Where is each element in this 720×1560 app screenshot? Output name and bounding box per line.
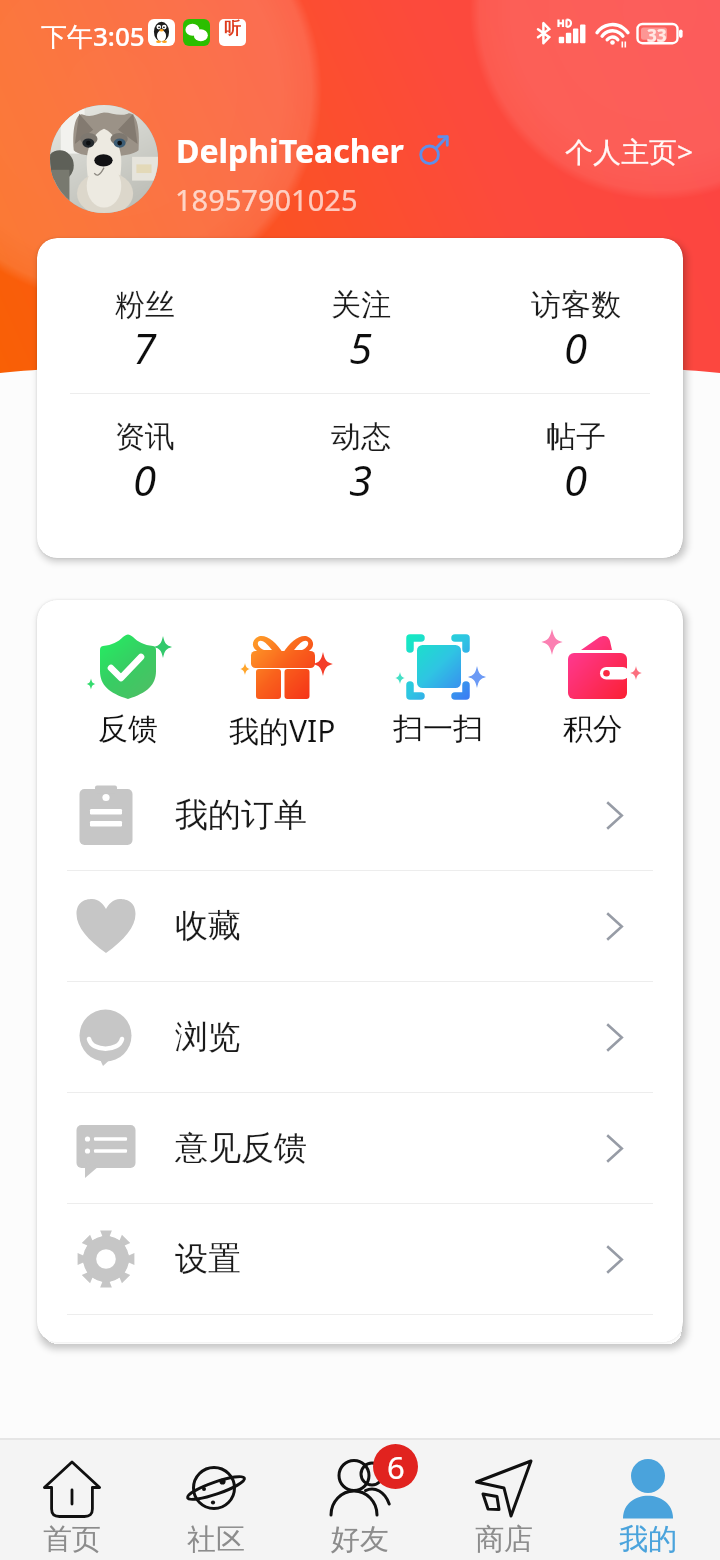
staticText: 33 — [647, 24, 667, 47]
staticText: 下午3:05 — [41, 18, 145, 54]
staticText: DelphiTeacher — [176, 129, 404, 173]
button[interactable]: 资讯 — [37, 418, 253, 513]
button[interactable]: 首页 — [0, 1440, 144, 1560]
staticText: 社区 — [187, 1521, 245, 1558]
staticText: 0 — [133, 451, 157, 508]
staticText: 5 — [349, 319, 373, 376]
staticText: 0 — [564, 319, 588, 376]
button[interactable]: 我的订单 — [37, 760, 683, 870]
staticText: 访客数 — [531, 286, 621, 324]
button[interactable]: 设置 — [37, 1204, 683, 1314]
button[interactable]: 帖子 — [468, 418, 683, 513]
button[interactable]: 关注 — [253, 286, 468, 381]
staticText: 听 — [224, 19, 241, 39]
staticText: 我的VIP — [229, 710, 336, 751]
staticText: 关注 — [331, 286, 391, 324]
staticText: 粉丝 — [115, 286, 175, 324]
staticText: 帖子 — [546, 418, 606, 456]
staticText: 我的订单 — [175, 794, 307, 836]
staticText: 收藏 — [175, 905, 241, 947]
button[interactable]: 动态 — [253, 418, 468, 513]
staticText: 反馈 — [98, 710, 158, 748]
button[interactable]: 意见反馈 — [37, 1093, 683, 1203]
button[interactable]: 粉丝 — [37, 286, 253, 381]
staticText: 0 — [564, 451, 588, 508]
button[interactable]: 我的 — [576, 1440, 720, 1560]
button[interactable]: 访客数 — [468, 286, 683, 381]
staticText: 6 — [387, 1446, 405, 1488]
button[interactable]: Avatar — [50, 105, 158, 213]
button[interactable]: 积分 — [515, 600, 670, 760]
staticText: 积分 — [563, 710, 623, 748]
staticText: 个人主页> — [565, 132, 694, 170]
button[interactable]: 浏览 — [37, 982, 683, 1092]
button[interactable]: 反馈 — [50, 600, 205, 760]
staticText: 浏览 — [175, 1016, 241, 1058]
button[interactable]: 扫一扫 — [360, 600, 515, 760]
button[interactable]: 社区 — [144, 1440, 288, 1560]
staticText: 好友 — [331, 1521, 389, 1558]
staticText: 7 — [133, 319, 157, 376]
staticText: 资讯 — [115, 418, 175, 456]
staticText: 商店 — [475, 1521, 533, 1558]
staticText: 18957901025 — [175, 180, 358, 219]
button[interactable]: 我的VIP — [205, 600, 360, 760]
staticText: 设置 — [175, 1238, 241, 1280]
button[interactable]: 6 — [288, 1440, 432, 1560]
staticText: 意见反馈 — [175, 1127, 307, 1169]
button[interactable]: 商店 — [432, 1440, 576, 1560]
button[interactable]: 收藏 — [37, 871, 683, 981]
staticText: 动态 — [331, 418, 391, 456]
staticText: 我的 — [619, 1521, 677, 1558]
staticText: 扫一扫 — [393, 710, 483, 748]
staticText: 首页 — [43, 1521, 101, 1558]
button[interactable]: 个人主页> — [559, 128, 700, 174]
staticText: 3 — [349, 451, 373, 508]
